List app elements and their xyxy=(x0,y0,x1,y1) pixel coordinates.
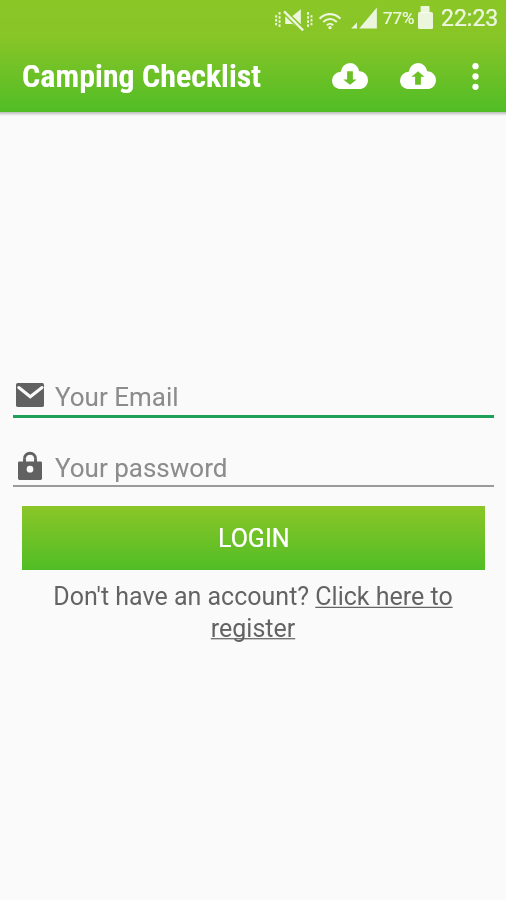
button[interactable]: Download xyxy=(322,52,378,100)
staticText: Your Email xyxy=(55,382,179,412)
button[interactable]: More options xyxy=(451,52,499,100)
staticText: 77% xyxy=(383,8,415,28)
staticText: 22:23 xyxy=(441,5,499,32)
staticText: Don't have an account? Click here to reg… xyxy=(45,582,461,643)
button[interactable]: LOGIN xyxy=(22,506,485,570)
staticText: Your password xyxy=(55,453,228,483)
button[interactable]: Don't have an account? Click here to reg… xyxy=(45,582,461,643)
staticText: LOGIN xyxy=(218,524,290,553)
button[interactable]: Upload xyxy=(390,52,446,100)
staticText: Camping Checklist xyxy=(22,57,262,95)
